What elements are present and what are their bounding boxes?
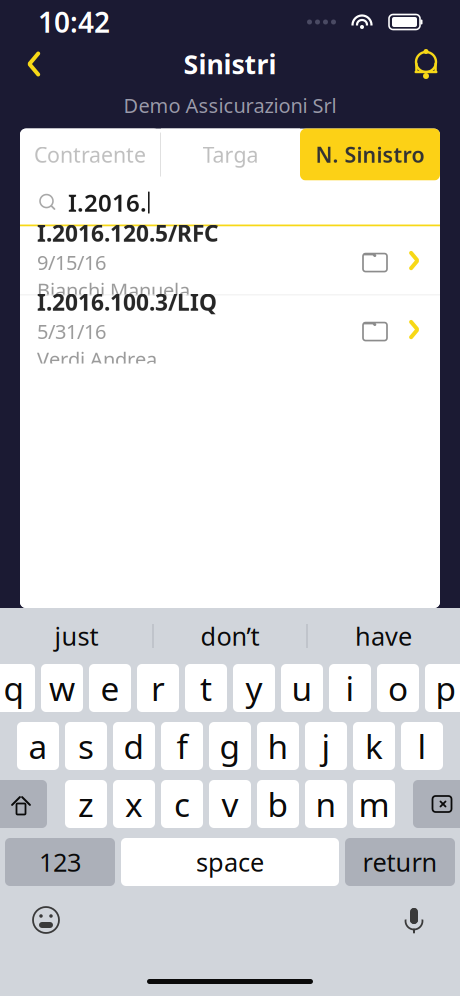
- staticText: w: [49, 666, 75, 710]
- button[interactable]: Emoji: [24, 898, 68, 942]
- staticText: I.2016.: [68, 187, 147, 218]
- staticText: s: [78, 724, 94, 768]
- staticText: Targa: [202, 140, 258, 169]
- staticText: d: [123, 724, 144, 768]
- staticText: a: [28, 724, 47, 768]
- staticText: u: [291, 666, 312, 710]
- button[interactable]: u: [281, 664, 323, 712]
- button[interactable]: o: [377, 664, 419, 712]
- staticText: Verdi Andrea: [37, 346, 157, 372]
- button[interactable]: Delete: [413, 780, 460, 828]
- staticText: i: [345, 666, 354, 710]
- staticText: k: [365, 724, 383, 768]
- button[interactable]: j: [305, 722, 347, 770]
- button[interactable]: I.2016.120.5/RFC: [20, 227, 440, 295]
- button[interactable]: d: [113, 722, 155, 770]
- staticText: have: [355, 619, 412, 653]
- button[interactable]: z: [65, 780, 107, 828]
- button[interactable]: v: [209, 780, 251, 828]
- button[interactable]: Shift: [0, 780, 47, 828]
- staticText: e: [100, 666, 119, 710]
- button[interactable]: e: [89, 664, 131, 712]
- staticText: j: [321, 724, 330, 768]
- staticText: just: [54, 619, 98, 653]
- staticText: h: [267, 724, 288, 768]
- button[interactable]: a: [17, 722, 59, 770]
- button[interactable]: f: [161, 722, 203, 770]
- staticText: o: [388, 666, 408, 710]
- staticText: don’t: [200, 619, 259, 653]
- staticText: t: [200, 666, 212, 710]
- staticText: N. Sinistro: [315, 140, 424, 169]
- button[interactable]: I.2016.100.3/LIQ: [20, 296, 440, 364]
- staticText: I.2016.120.5/RFC: [37, 218, 219, 248]
- staticText: v: [221, 782, 238, 826]
- staticText: return: [362, 845, 437, 879]
- button[interactable]: N. Sinistro: [300, 129, 440, 181]
- button[interactable]: return: [345, 838, 455, 886]
- button[interactable]: r: [137, 664, 179, 712]
- button[interactable]: n: [305, 780, 347, 828]
- staticText: n: [315, 782, 336, 826]
- button[interactable]: q: [0, 664, 35, 712]
- staticText: g: [219, 724, 240, 768]
- staticText: 123: [39, 845, 81, 879]
- button[interactable]: t: [185, 664, 227, 712]
- staticText: f: [176, 724, 187, 768]
- staticText: Bianchi Manuela: [37, 277, 190, 303]
- staticText: y: [245, 666, 262, 710]
- button[interactable]: h: [257, 722, 299, 770]
- staticText: 5/31/16: [37, 318, 106, 345]
- staticText: space: [196, 845, 264, 879]
- staticText: r: [151, 666, 165, 710]
- button[interactable]: 123: [5, 838, 115, 886]
- button[interactable]: have: [307, 613, 459, 659]
- staticText: l: [417, 724, 426, 768]
- button[interactable]: don’t: [153, 613, 306, 659]
- staticText: q: [3, 666, 24, 710]
- button[interactable]: b: [257, 780, 299, 828]
- button[interactable]: l: [401, 722, 443, 770]
- staticText: Sinistri: [183, 46, 276, 82]
- staticText: x: [125, 782, 143, 826]
- staticText: m: [358, 782, 389, 826]
- button[interactable]: Dictation: [392, 898, 436, 942]
- button[interactable]: just: [0, 613, 152, 659]
- staticText: z: [78, 782, 94, 826]
- staticText: Demo Assicurazioni Srl: [123, 92, 336, 119]
- staticText: c: [174, 782, 190, 826]
- button[interactable]: s: [65, 722, 107, 770]
- staticText: I.2016.100.3/LIQ: [37, 287, 217, 317]
- staticText: 10:42: [38, 3, 110, 41]
- staticText: Contraente: [34, 140, 146, 169]
- staticText: b: [267, 782, 288, 826]
- button[interactable]: i: [329, 664, 371, 712]
- button[interactable]: y: [233, 664, 275, 712]
- button[interactable]: g: [209, 722, 251, 770]
- button[interactable]: w: [41, 664, 83, 712]
- button[interactable]: p: [425, 664, 460, 712]
- button[interactable]: Targa: [161, 129, 300, 181]
- button[interactable]: Notifications: [404, 42, 448, 86]
- staticText: p: [435, 666, 456, 710]
- button[interactable]: space: [121, 838, 339, 886]
- button[interactable]: x: [113, 780, 155, 828]
- staticText: 9/15/16: [37, 249, 106, 276]
- button[interactable]: Contraente: [20, 129, 160, 181]
- button[interactable]: Back: [12, 42, 56, 86]
- button[interactable]: k: [353, 722, 395, 770]
- button[interactable]: m: [353, 780, 395, 828]
- button[interactable]: c: [161, 780, 203, 828]
